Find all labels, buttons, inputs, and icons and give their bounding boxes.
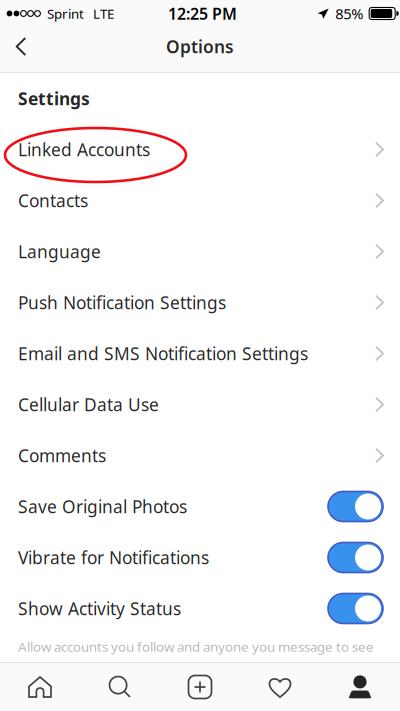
button[interactable]: Show Activity Status [328, 593, 383, 623]
button[interactable]: New Post [160, 663, 240, 711]
button[interactable]: Home [0, 663, 80, 711]
button[interactable]: Language [0, 226, 400, 277]
button[interactable]: Activity [240, 663, 320, 711]
button[interactable]: Back [0, 27, 46, 72]
button[interactable]: Comments [0, 430, 400, 481]
staticText: Comments [18, 444, 106, 467]
staticText: Save Original Photos [18, 495, 187, 518]
staticText: Linked Accounts [18, 138, 150, 161]
staticText: 85% [335, 4, 363, 23]
staticText: Contacts [18, 189, 88, 212]
button[interactable]: Vibrate for Notifications [328, 542, 383, 572]
staticText: Language [18, 240, 101, 263]
staticText: Allow accounts you follow and anyone you… [18, 638, 374, 655]
staticText: Vibrate for Notifications [18, 546, 209, 569]
button[interactable]: Profile [320, 663, 400, 711]
button[interactable]: Email and SMS Notification Settings [0, 328, 400, 379]
staticText: Email and SMS Notification Settings [18, 342, 308, 365]
staticText: 12:25 PM [168, 3, 237, 24]
button[interactable]: Push Notification Settings [0, 277, 400, 328]
button[interactable]: Search [80, 663, 160, 711]
button[interactable]: Contacts [0, 175, 400, 226]
staticText: Show Activity Status [18, 597, 181, 620]
button[interactable]: Cellular Data Use [0, 379, 400, 430]
staticText: Push Notification Settings [18, 291, 226, 314]
button[interactable]: Linked Accounts [0, 124, 400, 175]
button[interactable]: Save Original Photos [328, 491, 383, 521]
staticText: Options [166, 35, 234, 58]
staticText: Sprint [47, 5, 84, 22]
staticText: Cellular Data Use [18, 393, 159, 416]
staticText: LTE [93, 5, 114, 22]
staticText: Settings [18, 87, 90, 110]
